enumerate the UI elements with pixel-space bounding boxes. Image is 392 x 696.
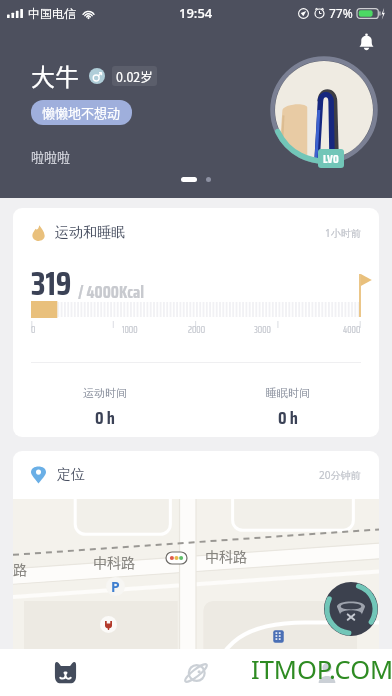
button[interactable]: 定位 xyxy=(31,451,361,499)
staticText: 定位 xyxy=(57,466,85,484)
staticText: 0 h xyxy=(278,404,298,432)
button[interactable]: 运动时间 xyxy=(13,386,196,432)
button[interactable]: Profile xyxy=(261,649,392,696)
staticText: 中科路 xyxy=(93,552,135,572)
staticText: 懒懒地不想动 xyxy=(42,103,121,122)
staticText: LV0 xyxy=(323,149,339,168)
staticText: 77% xyxy=(329,5,353,21)
staticText: 0 h xyxy=(95,404,115,432)
staticText: 路 xyxy=(13,559,27,579)
button[interactable]: Discover xyxy=(130,649,261,696)
staticText: ITMOP.COM xyxy=(251,652,392,687)
staticText: 4000 xyxy=(343,323,361,337)
staticText: / 4000Kcal xyxy=(78,279,144,306)
staticText: 睡眠时间 xyxy=(266,386,310,400)
staticText: 0.02岁 xyxy=(116,67,153,85)
staticText: 2000 xyxy=(188,323,205,337)
staticText: 利海大厦 xyxy=(258,647,311,666)
staticText: 1小时前 xyxy=(325,226,361,240)
button[interactable]: 睡眠时间 xyxy=(196,386,379,432)
staticText: 中科路 xyxy=(205,546,247,566)
button[interactable]: 懒懒地不想动 xyxy=(31,100,132,125)
button[interactable]: Notifications xyxy=(350,26,382,58)
staticText: 大牛 xyxy=(31,58,79,93)
staticText: 运动和睡眠 xyxy=(55,224,125,242)
staticText: 19:54 xyxy=(179,4,213,22)
staticText: 3000 xyxy=(254,323,271,337)
staticText: 20分钟前 xyxy=(319,468,361,482)
staticText: 319 xyxy=(31,258,72,310)
staticText: 运动时间 xyxy=(83,386,127,400)
staticText: 中国电信 xyxy=(28,6,76,21)
staticText: 1000 xyxy=(122,323,138,337)
button[interactable]: Pet location xyxy=(169,671,213,695)
button[interactable]: 运动和睡眠 xyxy=(13,208,379,437)
button[interactable]: Pet xyxy=(0,649,130,696)
staticText: P xyxy=(111,577,120,596)
button[interactable]: Collar device xyxy=(324,582,378,636)
staticText: 0 xyxy=(31,323,36,337)
staticText: 啦啦啦 xyxy=(31,147,71,166)
